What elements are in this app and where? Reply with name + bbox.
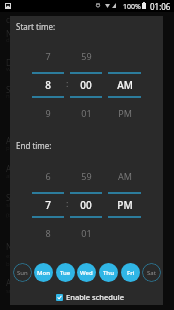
staticText: 59 bbox=[81, 170, 92, 182]
staticText: About bbox=[6, 277, 29, 288]
staticText: Notifi bbox=[6, 241, 27, 252]
staticText: Advan bbox=[6, 163, 30, 174]
staticText: End time: bbox=[16, 140, 52, 151]
staticText: 9 bbox=[45, 107, 51, 119]
staticText: ck bbox=[6, 14, 15, 25]
staticText: 00 bbox=[80, 198, 92, 212]
staticText: Sat bbox=[147, 269, 156, 277]
staticText: 8 bbox=[45, 227, 51, 239]
staticText: Do no bbox=[6, 57, 29, 68]
button[interactable]: Fri bbox=[121, 263, 140, 282]
staticText: 59 bbox=[81, 50, 92, 62]
staticText: per-a bbox=[6, 144, 21, 152]
staticText: Enable schedule bbox=[66, 292, 124, 302]
button[interactable]: AM bbox=[108, 45, 141, 133]
staticText: 01 bbox=[81, 227, 92, 239]
staticText: exclu bbox=[6, 252, 21, 260]
button[interactable]: AM bbox=[108, 165, 141, 253]
button[interactable]: 59 bbox=[70, 165, 102, 253]
button[interactable]: 7 bbox=[32, 45, 64, 133]
staticText: : bbox=[66, 77, 69, 89]
button[interactable]: Tue bbox=[56, 263, 75, 282]
staticText: Thu bbox=[103, 269, 114, 277]
button[interactable]: Enable schedule bbox=[56, 292, 124, 302]
staticText: 8 bbox=[45, 78, 51, 92]
button[interactable]: Thu bbox=[99, 263, 118, 282]
staticText: : bbox=[66, 197, 69, 209]
staticText: devic bbox=[6, 36, 21, 44]
staticText: block bbox=[6, 260, 21, 268]
staticText: Night bbox=[6, 28, 27, 39]
button[interactable]: 6 bbox=[32, 165, 64, 253]
staticText: 100% bbox=[123, 2, 141, 12]
staticText: Tue bbox=[60, 269, 71, 277]
staticText: when bbox=[6, 65, 22, 73]
staticText: 01:06 bbox=[150, 1, 171, 12]
staticText: Sun bbox=[17, 269, 28, 277]
staticText: 01 bbox=[81, 107, 92, 119]
button[interactable]: Wed bbox=[77, 263, 96, 282]
staticText: notifi bbox=[6, 92, 21, 100]
staticText: Mon bbox=[37, 269, 50, 277]
staticText: AM bbox=[117, 78, 133, 92]
button[interactable]: Mon bbox=[34, 263, 53, 282]
staticText: (time bbox=[6, 211, 21, 219]
staticText: 7 bbox=[45, 50, 51, 62]
staticText: PM bbox=[118, 107, 132, 119]
staticText: sleep bbox=[6, 201, 21, 209]
button[interactable]: Sat bbox=[142, 263, 161, 282]
staticText: also bbox=[6, 172, 18, 180]
button[interactable]: Sun bbox=[13, 263, 32, 282]
staticText: AM bbox=[118, 170, 132, 182]
staticText: supp bbox=[6, 287, 20, 295]
staticText: Wed bbox=[80, 269, 93, 277]
button[interactable]: 59 bbox=[70, 45, 102, 133]
staticText: 00 bbox=[80, 78, 92, 92]
staticText: App n bbox=[6, 135, 28, 146]
staticText: Sound bbox=[6, 84, 31, 95]
staticText: PM bbox=[117, 198, 133, 212]
staticText: Scree bbox=[6, 192, 27, 203]
staticText: 7 bbox=[45, 198, 51, 212]
staticText: 6 bbox=[45, 170, 51, 182]
staticText: Fri bbox=[127, 269, 135, 277]
staticText: Start time: bbox=[16, 21, 56, 32]
